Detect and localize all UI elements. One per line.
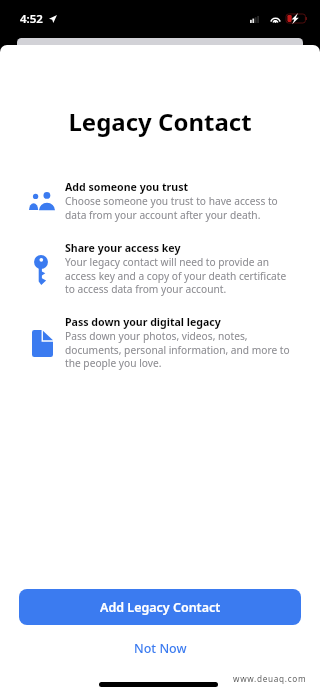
button[interactable]: Add Legacy Contact <box>19 589 301 625</box>
staticText: 4:52 <box>20 11 43 27</box>
staticText: Pass down your photos, videos, notes, do… <box>65 329 293 370</box>
staticText: Not Now <box>134 640 187 657</box>
staticText: www.deuaq.com <box>233 673 307 684</box>
other: Two people <box>26 180 65 214</box>
other: Key <box>26 241 65 275</box>
staticText: Add Legacy Contact <box>100 599 221 616</box>
button[interactable]: Not Now <box>0 625 320 671</box>
staticText: Add someone you trust <box>65 180 189 194</box>
staticText: Your legacy contact will need to provide… <box>65 255 293 296</box>
staticText: Share your access key <box>65 241 181 255</box>
staticText: Choose someone you trust to have access … <box>65 194 293 222</box>
staticText: Pass down your digital legacy <box>65 315 221 329</box>
other: Document <box>26 315 65 349</box>
staticText: Legacy Contact <box>0 105 320 138</box>
